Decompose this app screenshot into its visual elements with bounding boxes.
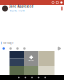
staticText: Active now xyxy=(9,9,24,12)
button[interactable]: Photo 1 xyxy=(9,51,24,66)
button[interactable]: Stickers xyxy=(23,47,26,50)
staticText: Jane Appleseed xyxy=(9,5,33,8)
button[interactable]: Photos xyxy=(16,47,19,50)
button[interactable]: Account xyxy=(60,1,62,4)
staticText: Message xyxy=(3,41,14,45)
staticText: All Photos xyxy=(28,60,34,61)
button[interactable]: Search xyxy=(52,1,54,4)
button[interactable]: Camera xyxy=(56,1,58,4)
button[interactable]: Photo 2 xyxy=(38,51,54,66)
button[interactable]: Apps xyxy=(2,47,5,50)
button[interactable]: Send xyxy=(57,47,61,50)
button[interactable]: All Photos xyxy=(24,51,38,66)
button[interactable]: Photo 5 xyxy=(38,66,54,75)
button[interactable]: Camera xyxy=(9,47,12,50)
